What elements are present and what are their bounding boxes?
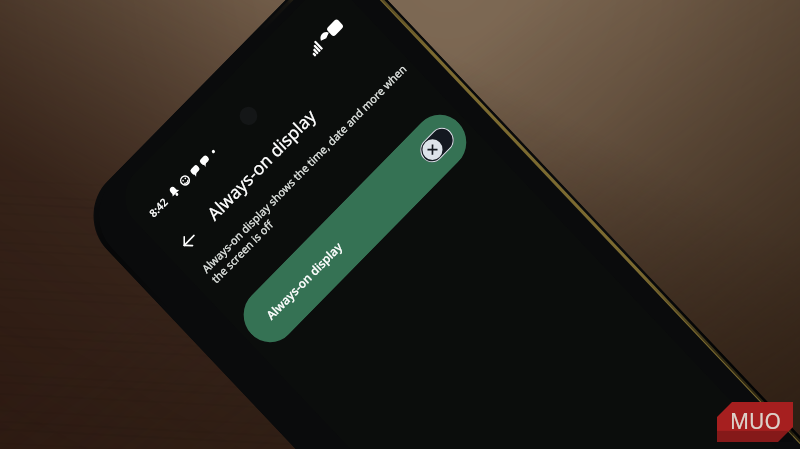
button[interactable]: Back <box>166 217 211 264</box>
button[interactable]: MakeUseOf watermark <box>717 402 793 442</box>
staticText: Always-on display <box>202 102 321 226</box>
staticText: MUO <box>730 407 781 436</box>
button[interactable]: Always-on display toggle <box>415 122 459 167</box>
staticText: Always-on display <box>262 237 346 323</box>
staticText: 8:42 <box>146 195 171 220</box>
staticText: Always-on display shows the time, date a… <box>198 58 420 288</box>
button[interactable]: Always-on display <box>232 101 478 356</box>
